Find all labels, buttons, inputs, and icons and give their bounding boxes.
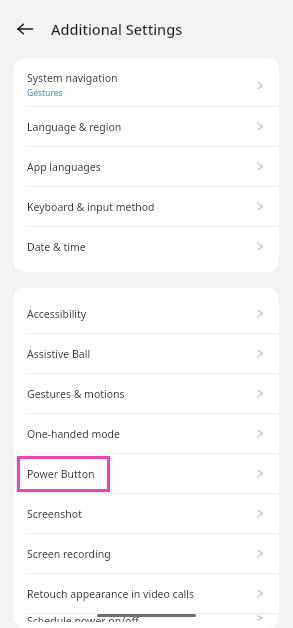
button[interactable]: Assistive Ball [14, 334, 279, 373]
button[interactable]: Back [14, 18, 36, 40]
staticText: Schedule power on/off [27, 614, 139, 622]
staticText: Gestures [27, 87, 63, 99]
button[interactable]: Schedule power on/off [14, 614, 279, 622]
button[interactable]: System navigation [14, 64, 279, 106]
button[interactable]: Language & region [14, 107, 279, 146]
button[interactable]: Power Button [14, 454, 279, 493]
button[interactable]: Screenshot [14, 494, 279, 533]
staticText: System navigation [27, 71, 118, 85]
staticText: App languages [27, 160, 101, 174]
button[interactable]: Accessibility [14, 294, 279, 333]
staticText: Retouch appearance in video calls [27, 587, 194, 601]
staticText: Gestures & motions [27, 387, 125, 401]
staticText: Screenshot [27, 507, 82, 521]
button[interactable]: Retouch appearance in video calls [14, 574, 279, 613]
button[interactable]: App languages [14, 147, 279, 186]
button[interactable]: One-handed mode [14, 414, 279, 453]
staticText: Date & time [27, 240, 86, 254]
button[interactable]: Screen recording [14, 534, 279, 573]
button[interactable]: Keyboard & input method [14, 187, 279, 226]
staticText: One-handed mode [27, 427, 120, 441]
staticText: Keyboard & input method [27, 200, 155, 214]
staticText: Accessibility [27, 307, 87, 321]
staticText: Language & region [27, 120, 122, 134]
staticText: Additional Settings [51, 19, 183, 39]
staticText: Screen recording [27, 547, 111, 561]
button[interactable]: Date & time [14, 227, 279, 266]
staticText: Assistive Ball [27, 347, 91, 361]
staticText: Power Button [27, 467, 95, 481]
button[interactable]: Gestures & motions [14, 374, 279, 413]
